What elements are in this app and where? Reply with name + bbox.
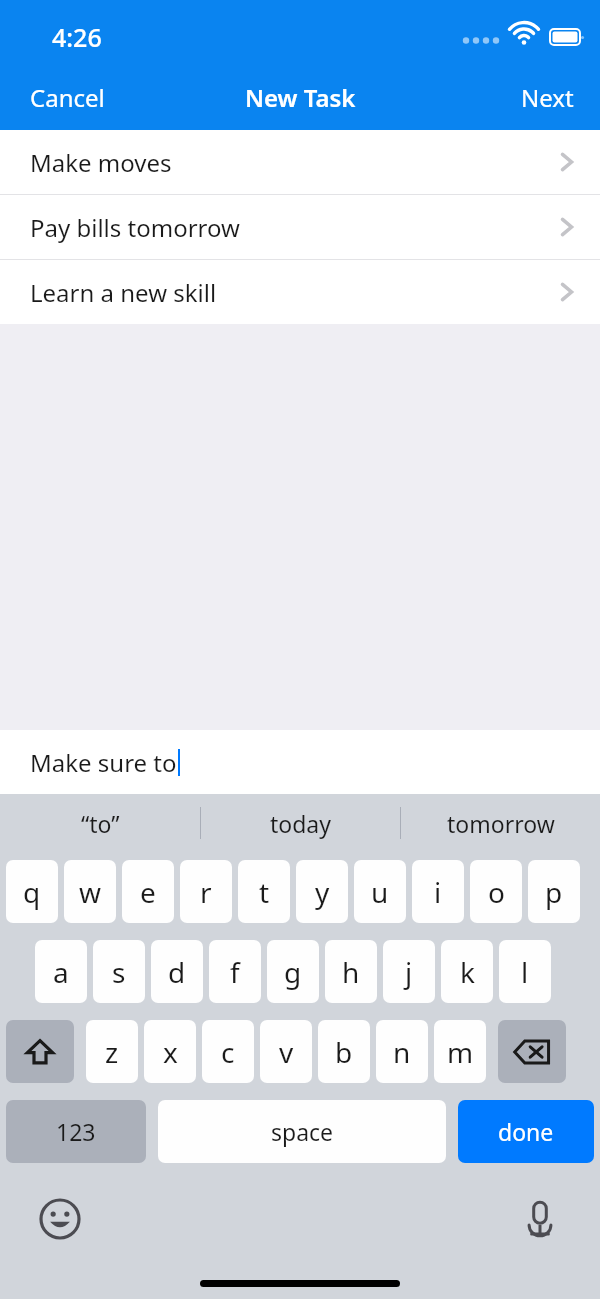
button[interactable]: today xyxy=(201,794,400,852)
button[interactable]: q xyxy=(6,860,58,923)
staticText: tomorrow xyxy=(447,808,555,839)
button[interactable]: k xyxy=(441,940,493,1003)
button[interactable]: x xyxy=(144,1020,196,1083)
button[interactable]: f xyxy=(209,940,261,1003)
button[interactable]: a xyxy=(35,940,87,1003)
button[interactable]: l xyxy=(499,940,551,1003)
button[interactable]: done xyxy=(458,1100,594,1163)
button[interactable]: d xyxy=(151,940,203,1003)
staticText: m xyxy=(447,1033,474,1071)
staticText: y xyxy=(315,873,330,911)
staticText: Pay bills tomorrow xyxy=(30,211,240,244)
button[interactable]: Backspace xyxy=(498,1020,566,1083)
staticText: Make moves xyxy=(30,146,172,179)
staticText: u xyxy=(371,873,389,911)
button[interactable]: “to” xyxy=(0,794,200,852)
button[interactable]: o xyxy=(470,860,522,923)
button[interactable]: z xyxy=(86,1020,138,1083)
button[interactable]: e xyxy=(122,860,174,923)
button[interactable]: w xyxy=(64,860,116,923)
button[interactable]: tomorrow xyxy=(401,794,600,852)
button[interactable]: y xyxy=(296,860,348,923)
button[interactable]: v xyxy=(260,1020,312,1083)
staticText: New Task xyxy=(245,81,356,114)
staticText: x xyxy=(163,1033,178,1071)
button[interactable]: b xyxy=(318,1020,370,1083)
button[interactable]: j xyxy=(383,940,435,1003)
button[interactable]: Shift xyxy=(6,1020,74,1083)
staticText: Learn a new skill xyxy=(30,276,217,309)
button[interactable]: r xyxy=(180,860,232,923)
staticText: z xyxy=(105,1033,119,1071)
staticText: p xyxy=(545,873,563,911)
button[interactable]: h xyxy=(325,940,377,1003)
staticText: r xyxy=(200,873,212,911)
staticText: n xyxy=(393,1033,411,1071)
staticText: c xyxy=(221,1033,235,1071)
staticText: w xyxy=(79,873,102,911)
staticText: Cancel xyxy=(30,81,105,114)
staticText: f xyxy=(230,953,240,991)
button[interactable]: Learn a new skill xyxy=(0,260,600,324)
staticText: k xyxy=(460,953,475,991)
staticText: h xyxy=(342,953,360,991)
button[interactable]: n xyxy=(376,1020,428,1083)
staticText: t xyxy=(259,873,270,911)
staticText: i xyxy=(434,873,442,911)
button[interactable]: 123 xyxy=(6,1100,146,1163)
staticText: Next xyxy=(521,81,574,114)
staticText: Make sure to xyxy=(30,746,177,779)
button[interactable]: t xyxy=(238,860,290,923)
button[interactable]: Make moves xyxy=(0,130,600,194)
button[interactable]: Emoji keyboard xyxy=(26,1185,94,1253)
button[interactable]: i xyxy=(412,860,464,923)
button[interactable]: s xyxy=(93,940,145,1003)
staticText: o xyxy=(488,873,505,911)
staticText: b xyxy=(335,1033,353,1071)
staticText: “to” xyxy=(81,808,120,839)
button[interactable]: u xyxy=(354,860,406,923)
staticText: today xyxy=(270,808,331,839)
button[interactable]: Cancel xyxy=(0,67,135,128)
button[interactable]: p xyxy=(528,860,580,923)
staticText: s xyxy=(112,953,126,991)
staticText: q xyxy=(23,873,41,911)
button[interactable]: space xyxy=(158,1100,446,1163)
staticText: g xyxy=(284,953,302,991)
staticText: e xyxy=(140,873,156,911)
staticText: v xyxy=(279,1033,294,1071)
button[interactable]: Pay bills tomorrow xyxy=(0,195,600,259)
button[interactable]: m xyxy=(434,1020,486,1083)
button[interactable]: Make sure to xyxy=(0,730,600,794)
button[interactable]: Next xyxy=(495,67,600,128)
button[interactable]: Dictation xyxy=(506,1185,574,1253)
staticText: 4:26 xyxy=(52,20,102,54)
staticText: j xyxy=(405,953,413,991)
staticText: d xyxy=(168,953,186,991)
staticText: a xyxy=(53,953,69,991)
staticText: done xyxy=(498,1116,554,1147)
button[interactable]: g xyxy=(267,940,319,1003)
staticText: 123 xyxy=(56,1116,96,1147)
staticText: l xyxy=(521,953,529,991)
staticText: space xyxy=(271,1116,334,1147)
button[interactable]: c xyxy=(202,1020,254,1083)
